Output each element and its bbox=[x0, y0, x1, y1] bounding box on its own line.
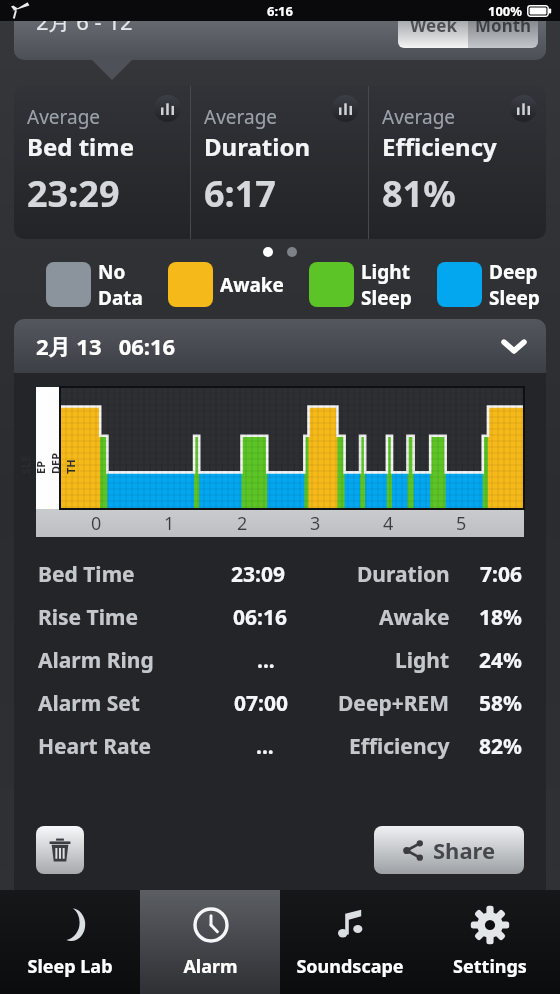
staticText: 23:29 bbox=[27, 169, 120, 218]
staticText: 82% bbox=[479, 732, 522, 761]
staticText: Efficiency bbox=[349, 732, 450, 761]
staticText: 2 bbox=[237, 511, 248, 536]
staticText: Alarm Ring bbox=[38, 646, 154, 675]
staticText: Deep+REM bbox=[338, 689, 450, 718]
staticText: Sleep Lab bbox=[27, 954, 113, 979]
staticText: Sleep bbox=[489, 285, 540, 309]
staticText: 24% bbox=[479, 646, 522, 675]
staticText: 81% bbox=[382, 169, 456, 218]
button[interactable]: Statistics bbox=[154, 95, 181, 122]
staticText: Sleep bbox=[361, 285, 412, 309]
staticText: 4 bbox=[383, 511, 394, 536]
staticText: 6:16 bbox=[267, 2, 293, 20]
staticText: Average bbox=[204, 104, 278, 130]
staticText: Alarm Set bbox=[38, 689, 140, 718]
staticText: 7:06 bbox=[480, 560, 522, 589]
staticText: ... bbox=[256, 732, 274, 761]
staticText: Data bbox=[98, 285, 143, 309]
staticText: 1 bbox=[164, 511, 175, 536]
staticText: Awake bbox=[220, 272, 284, 298]
staticText: Week bbox=[410, 14, 457, 37]
staticText: 5 bbox=[456, 511, 467, 536]
staticText: 23:09 bbox=[231, 560, 285, 589]
staticText: Duration bbox=[204, 130, 310, 163]
staticText: Light bbox=[361, 259, 410, 285]
staticText: Alarm bbox=[183, 954, 238, 979]
staticText: No bbox=[98, 259, 126, 285]
button[interactable]: Share bbox=[374, 826, 524, 874]
staticText: ... bbox=[257, 646, 275, 675]
staticText: 18% bbox=[479, 603, 522, 632]
staticText: 2月 13 06:16 bbox=[36, 331, 176, 361]
button[interactable]: Soundscape bbox=[280, 890, 420, 994]
staticText: 06:16 bbox=[233, 603, 287, 632]
button[interactable]: Average bbox=[369, 86, 546, 239]
staticText: Average bbox=[382, 104, 456, 130]
button[interactable]: Delete bbox=[36, 826, 84, 874]
button[interactable]: Sleep Lab bbox=[0, 890, 140, 994]
staticText: SLEEP DEPTH bbox=[18, 450, 78, 474]
staticText: 0 bbox=[91, 511, 102, 536]
staticText: Duration bbox=[357, 560, 450, 589]
staticText: Bed Time bbox=[38, 560, 135, 589]
staticText: Share bbox=[433, 835, 496, 865]
staticText: 3 bbox=[310, 511, 321, 536]
staticText: Heart Rate bbox=[38, 732, 152, 761]
staticText: 6:17 bbox=[204, 169, 276, 218]
button[interactable]: Statistics bbox=[510, 95, 537, 122]
button[interactable]: 2月 13 06:16 bbox=[14, 319, 546, 373]
staticText: 100% bbox=[488, 2, 523, 20]
staticText: Light bbox=[395, 646, 450, 675]
staticText: Settings bbox=[453, 954, 527, 979]
button[interactable]: Month bbox=[468, 2, 538, 48]
staticText: Deep bbox=[489, 259, 538, 285]
staticText: Soundscape bbox=[296, 954, 404, 979]
button[interactable]: Average bbox=[14, 86, 190, 239]
other: Collapse details bbox=[502, 334, 526, 358]
staticText: 07:00 bbox=[234, 689, 288, 718]
staticText: Awake bbox=[379, 603, 450, 632]
button[interactable]: Week bbox=[398, 2, 468, 48]
staticText: Rise Time bbox=[38, 603, 139, 632]
staticText: 58% bbox=[479, 689, 522, 718]
staticText: Month bbox=[475, 14, 532, 37]
staticText: Efficiency bbox=[382, 130, 497, 163]
staticText: 2月 6 - 12 bbox=[36, 6, 133, 36]
button[interactable]: Average bbox=[191, 86, 368, 239]
button[interactable]: Settings bbox=[420, 890, 560, 994]
button[interactable]: Alarm bbox=[140, 890, 280, 994]
staticText: Average bbox=[27, 104, 101, 130]
button[interactable]: Statistics bbox=[332, 95, 359, 122]
staticText: Bed time bbox=[27, 130, 135, 163]
